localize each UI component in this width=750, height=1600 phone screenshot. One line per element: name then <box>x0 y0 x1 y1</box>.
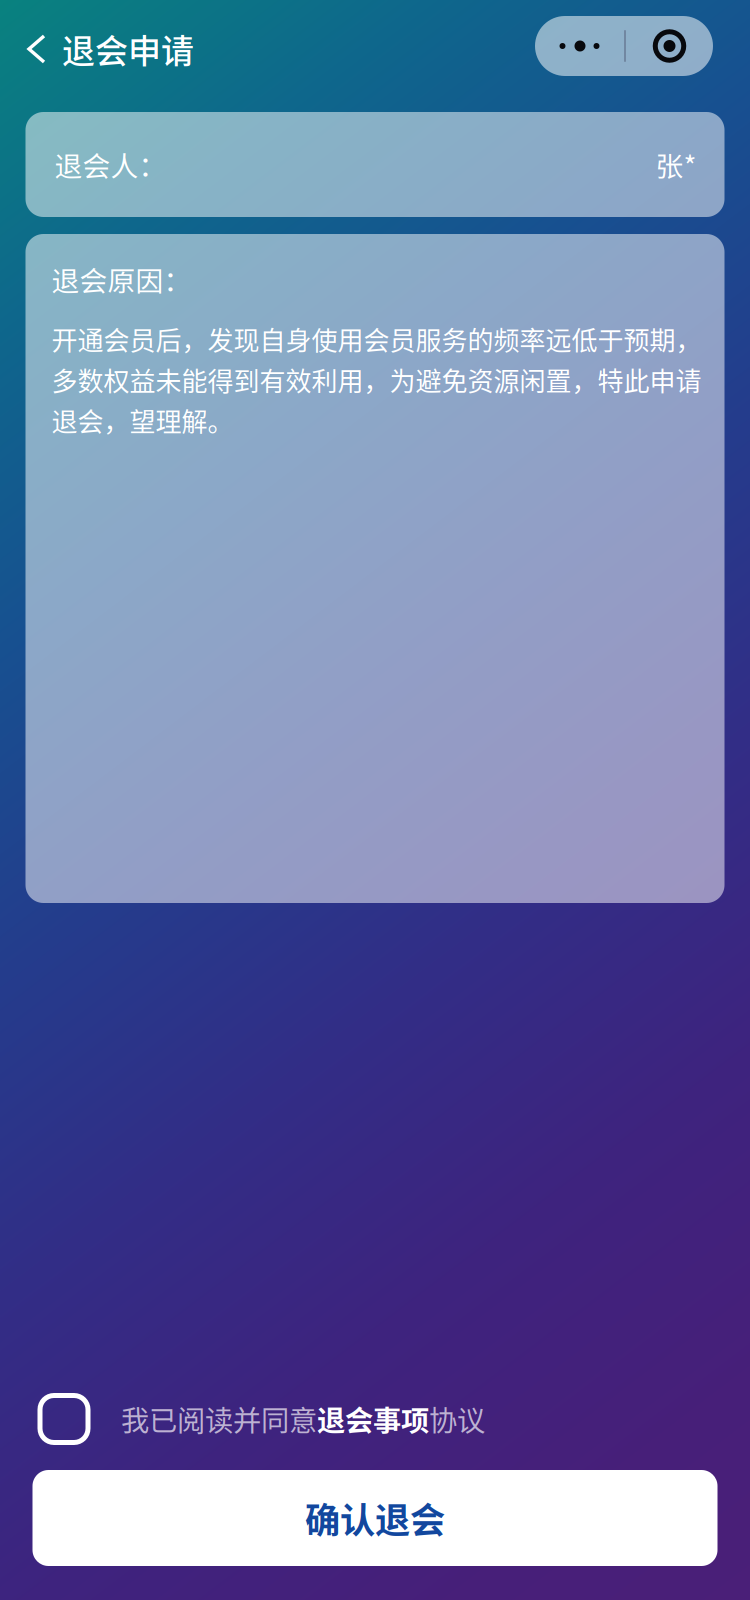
staticText: 退会人： <box>54 144 166 185</box>
staticText: 退会事项 <box>317 1398 429 1439</box>
staticText: 退会申请 <box>62 25 194 73</box>
staticText: 张* <box>655 144 696 185</box>
button[interactable]: Close mini program <box>626 16 713 76</box>
button[interactable]: 退会申请 <box>0 0 208 92</box>
button[interactable]: 我已阅读并同意 <box>0 1389 750 1449</box>
button[interactable]: More <box>535 16 624 76</box>
staticText: 协议 <box>429 1398 485 1439</box>
staticText: 退会原因： <box>51 259 191 299</box>
button[interactable]: 确认退会 <box>32 1470 717 1566</box>
staticText: 开通会员后，发现自身使用会员服务的频率远低于预期，多数权益未能得到有效利用，为避… <box>51 320 701 439</box>
staticText: 我已阅读并同意 <box>121 1398 317 1439</box>
staticText: 确认退会 <box>305 1492 445 1543</box>
